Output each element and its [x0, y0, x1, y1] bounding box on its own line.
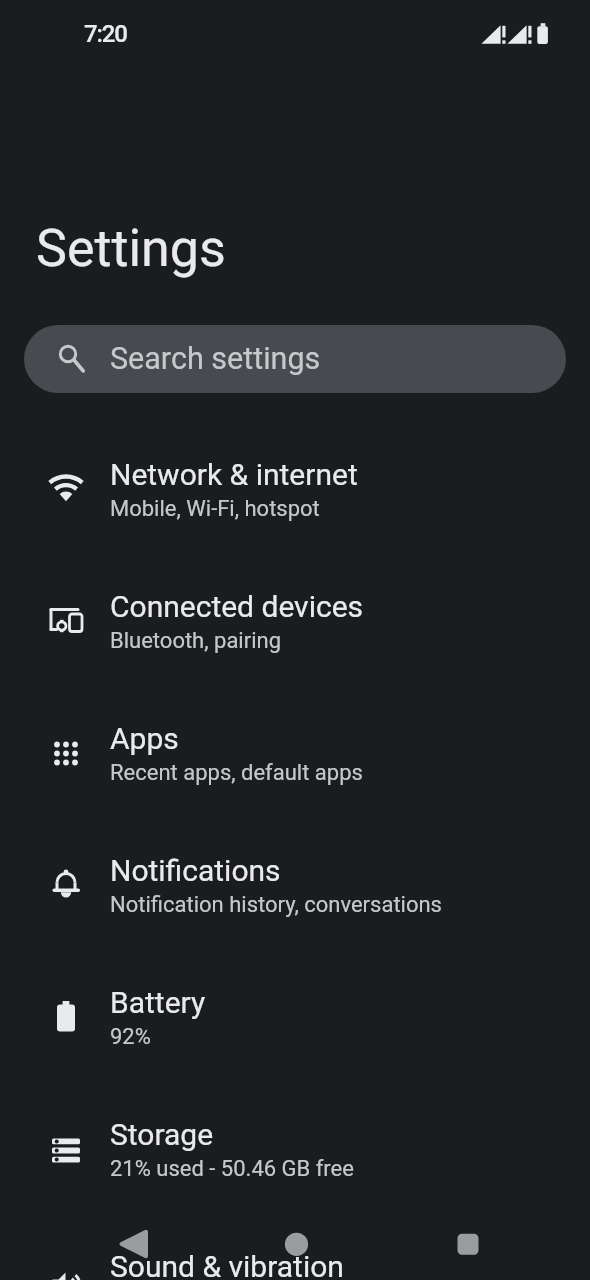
button[interactable]: Network & internet: [0, 426, 590, 558]
button[interactable]: Apps: [0, 690, 590, 822]
button[interactable]: Search settings: [24, 325, 566, 393]
staticText: Search settings: [110, 341, 321, 377]
staticText: Settings: [36, 218, 226, 279]
staticText: Battery: [110, 985, 206, 1020]
button[interactable]: [272, 1220, 320, 1268]
button[interactable]: Notifications: [0, 822, 590, 954]
staticText: Recent apps, default apps: [110, 760, 363, 786]
staticText: Bluetooth, pairing: [110, 628, 282, 654]
staticText: Network & internet: [110, 457, 358, 492]
button[interactable]: Sound & vibration: [0, 1218, 590, 1280]
button[interactable]: [444, 1220, 492, 1268]
staticText: 21% used - 50.46 GB free: [110, 1156, 354, 1182]
staticText: Mobile, Wi-Fi, hotspot: [110, 496, 320, 522]
button[interactable]: Connected devices: [0, 558, 590, 690]
staticText: Apps: [110, 721, 179, 756]
button[interactable]: [109, 1220, 157, 1268]
staticText: Storage: [110, 1117, 214, 1152]
staticText: Connected devices: [110, 589, 364, 624]
staticText: 92%: [110, 1024, 151, 1050]
staticText: Notifications: [110, 853, 281, 888]
button[interactable]: Storage: [0, 1086, 590, 1218]
button[interactable]: Battery: [0, 954, 590, 1086]
staticText: Notification history, conversations: [110, 892, 442, 918]
staticText: 7:20: [84, 20, 127, 48]
staticText: Sound & vibration: [110, 1249, 344, 1280]
